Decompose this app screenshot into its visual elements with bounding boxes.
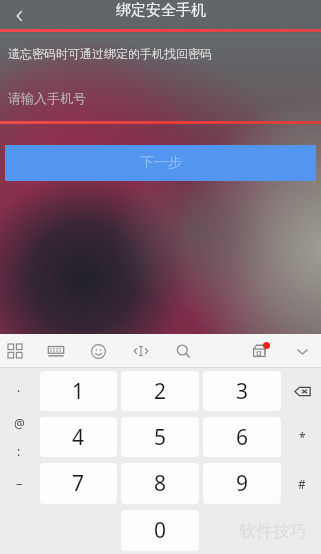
button[interactable]: Emoji — [85, 338, 111, 364]
staticText: 绑定安全手机 — [116, 1, 206, 20]
button[interactable]: Backspace — [284, 369, 320, 413]
staticText: 2 — [154, 377, 167, 406]
staticText: 1 — [72, 377, 85, 406]
staticText: * — [299, 429, 306, 445]
button[interactable] — [284, 508, 320, 553]
staticText: 4 — [72, 423, 85, 452]
button[interactable]: # — [284, 461, 320, 506]
staticText: 软件技巧 — [239, 521, 307, 542]
button[interactable]: @ — [1, 415, 37, 459]
staticText: 7 — [72, 469, 85, 498]
staticText: 9 — [236, 469, 249, 498]
button[interactable]: Collapse keyboard — [289, 338, 315, 364]
button[interactable]: Cursor — [128, 338, 154, 364]
button[interactable]: * — [284, 415, 320, 459]
button[interactable]: 0 — [121, 510, 199, 551]
staticText: # — [298, 476, 306, 492]
button[interactable]: Back — [0, 0, 40, 32]
button[interactable]: 2 — [121, 371, 199, 411]
button[interactable]: 4 — [40, 417, 117, 457]
button[interactable]: · — [1, 369, 37, 413]
staticText: 8 — [154, 469, 167, 498]
button[interactable]: 1 — [40, 371, 117, 411]
button[interactable]: − — [1, 461, 37, 506]
staticText: 0 — [154, 516, 167, 545]
staticText: · — [17, 383, 21, 399]
staticText: 5 — [154, 423, 167, 452]
staticText: 3 — [236, 377, 249, 406]
staticText: @ — [14, 415, 25, 431]
button[interactable]: Grid — [2, 338, 28, 364]
button[interactable] — [203, 510, 281, 551]
staticText: 下一步 — [140, 154, 182, 172]
staticText: − — [16, 476, 23, 492]
staticText: 6 — [236, 423, 249, 452]
button[interactable]: 下一步 — [5, 145, 316, 181]
button[interactable]: 9 — [203, 463, 281, 504]
button[interactable]: Search — [170, 338, 196, 364]
button[interactable]: Store — [247, 338, 273, 364]
button[interactable]: 8 — [121, 463, 199, 504]
button[interactable]: Keyboard — [43, 338, 69, 364]
staticText: : — [17, 443, 21, 459]
staticText: 请输入手机号 — [8, 90, 86, 106]
staticText: 遗忘密码时可通过绑定的手机找回密码 — [8, 46, 212, 61]
button[interactable]: 5 — [121, 417, 199, 457]
button[interactable]: 6 — [203, 417, 281, 457]
button[interactable]: 7 — [40, 463, 117, 504]
button[interactable]: 请输入手机号 — [0, 75, 321, 121]
button[interactable]: 3 — [203, 371, 281, 411]
